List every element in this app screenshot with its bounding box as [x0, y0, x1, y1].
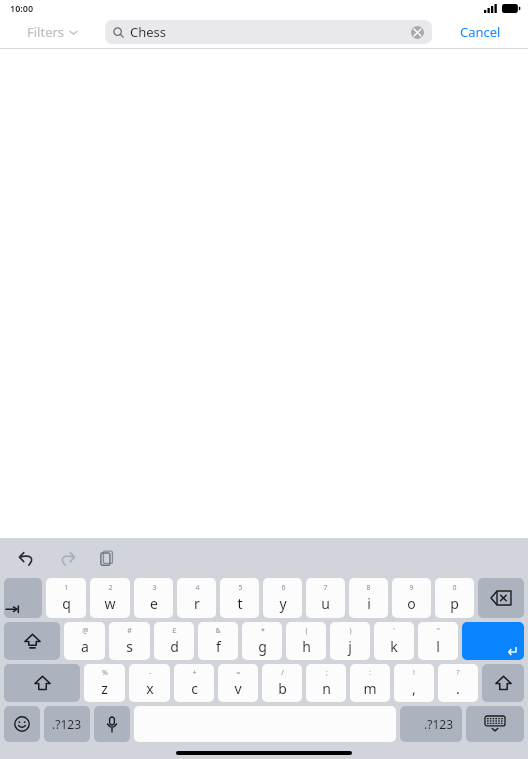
button[interactable]: # — [109, 622, 150, 660]
staticText: v — [234, 679, 242, 698]
staticText: 10:00 — [10, 2, 34, 14]
button[interactable]: % — [84, 664, 125, 702]
staticText: 3 — [152, 583, 157, 593]
staticText: * — [261, 626, 265, 636]
button[interactable]: Chess — [105, 20, 432, 44]
button[interactable]: Paste — [94, 545, 120, 571]
staticText: - — [149, 668, 152, 678]
button[interactable]: Key — [466, 706, 524, 742]
button[interactable]: ( — [286, 622, 326, 660]
staticText: i — [367, 594, 371, 613]
staticText: u — [321, 594, 330, 613]
button[interactable]: 5 — [220, 578, 259, 618]
button[interactable]: ! — [394, 664, 434, 702]
staticText: m — [363, 679, 377, 698]
staticText: ( — [305, 626, 308, 636]
button[interactable]: & — [198, 622, 238, 660]
button[interactable]: = — [218, 664, 258, 702]
button[interactable]: Undo — [14, 545, 40, 571]
button[interactable]: 4 — [177, 578, 216, 618]
button[interactable]: 6 — [263, 578, 302, 618]
staticText: 0 — [452, 583, 457, 593]
staticText: h — [302, 637, 311, 656]
button[interactable]: Clear text — [411, 26, 424, 39]
staticText: b — [278, 679, 287, 698]
staticText: .?123 — [424, 716, 454, 732]
button[interactable]: : — [350, 664, 390, 702]
staticText: ; — [326, 668, 328, 678]
staticText: e — [150, 594, 158, 613]
staticText: o — [407, 594, 416, 613]
button[interactable]: Key — [462, 622, 524, 660]
staticText: + — [192, 668, 197, 678]
button[interactable]: 8 — [349, 578, 388, 618]
staticText: g — [258, 637, 267, 656]
button[interactable]: ) — [330, 622, 370, 660]
button[interactable]: 1 — [46, 578, 86, 618]
button[interactable]: Key — [4, 578, 42, 618]
button[interactable]: Key — [94, 706, 130, 742]
staticText: Chess — [130, 23, 167, 41]
button[interactable]: Redo — [54, 545, 80, 571]
button[interactable]: Key — [482, 664, 524, 702]
button[interactable]: ; — [306, 664, 346, 702]
staticText: s — [126, 637, 133, 656]
staticText: n — [322, 679, 331, 698]
staticText: ! — [413, 668, 415, 678]
staticText: ) — [349, 626, 352, 636]
staticText: a — [81, 637, 89, 656]
button[interactable]: " — [418, 622, 458, 660]
staticText: q — [62, 594, 71, 613]
staticText: ' — [393, 626, 395, 636]
staticText: " — [437, 626, 440, 636]
button[interactable]: Key — [4, 706, 40, 742]
button[interactable]: Key — [478, 578, 524, 618]
staticText: 9 — [409, 583, 414, 593]
button[interactable]: Filters — [0, 16, 105, 48]
button[interactable]: ? — [438, 664, 478, 702]
staticText: p — [450, 594, 459, 613]
button[interactable]: 2 — [90, 578, 130, 618]
button[interactable]: + — [174, 664, 214, 702]
staticText: k — [390, 637, 398, 656]
button[interactable]: 9 — [392, 578, 431, 618]
staticText: . — [456, 679, 460, 698]
button[interactable]: ' — [374, 622, 414, 660]
button[interactable]: Key — [44, 706, 90, 742]
button[interactable]: 7 — [306, 578, 345, 618]
button[interactable]: / — [262, 664, 302, 702]
staticText: 2 — [108, 583, 113, 593]
staticText: 7 — [323, 583, 328, 593]
staticText: 8 — [366, 583, 371, 593]
button[interactable]: Key — [4, 664, 80, 702]
staticText: £ — [172, 626, 177, 636]
staticText: l — [436, 637, 440, 656]
staticText: ? — [456, 668, 460, 678]
staticText: .?123 — [52, 716, 82, 732]
button[interactable]: £ — [154, 622, 194, 660]
staticText: r — [194, 594, 200, 613]
button[interactable]: Cancel — [432, 16, 528, 48]
staticText: # — [127, 626, 132, 636]
staticText: % — [102, 668, 108, 678]
button[interactable]: 3 — [134, 578, 173, 618]
staticText: , — [412, 679, 416, 698]
staticText: j — [348, 637, 352, 656]
staticText: y — [279, 594, 287, 613]
staticText: @ — [82, 626, 89, 636]
staticText: = — [236, 668, 241, 678]
button[interactable]: 0 — [435, 578, 474, 618]
staticText: z — [101, 679, 108, 698]
staticText: w — [104, 594, 116, 613]
staticText: 4 — [195, 583, 200, 593]
button[interactable]: Key — [4, 622, 60, 660]
button[interactable]: * — [242, 622, 282, 660]
button[interactable]: - — [129, 664, 170, 702]
button[interactable]: Key — [400, 706, 462, 742]
button[interactable]: @ — [64, 622, 105, 660]
staticText: c — [191, 679, 198, 698]
staticText: Cancel — [460, 23, 501, 41]
staticText: Filters — [27, 23, 65, 41]
staticText: d — [170, 637, 179, 656]
